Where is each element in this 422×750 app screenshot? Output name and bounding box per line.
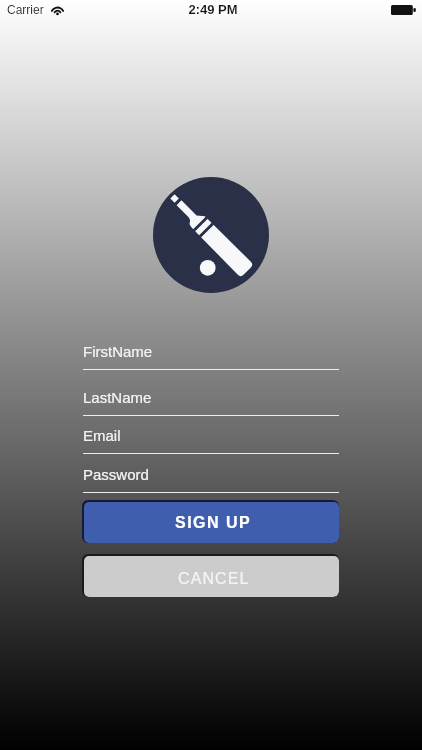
staticText: SIGN UP [175, 514, 252, 532]
other: Wi-Fi signal [51, 5, 64, 14]
staticText: LastName [83, 389, 152, 406]
button[interactable]: Password [83, 466, 339, 497]
staticText: 2:49 PM [2, 2, 422, 17]
button[interactable]: Email [83, 427, 339, 457]
button[interactable]: LastName [83, 389, 339, 419]
staticText: FirstName [83, 343, 153, 360]
staticText: Email [83, 427, 121, 444]
staticText: Password [83, 466, 149, 483]
button[interactable]: SIGN UP [82, 500, 339, 543]
other: Battery full [391, 5, 416, 15]
button[interactable]: FirstName [83, 343, 339, 373]
staticText: Carrier [7, 3, 44, 16]
staticText: CANCEL [178, 570, 250, 588]
button[interactable]: CANCEL [82, 554, 339, 597]
